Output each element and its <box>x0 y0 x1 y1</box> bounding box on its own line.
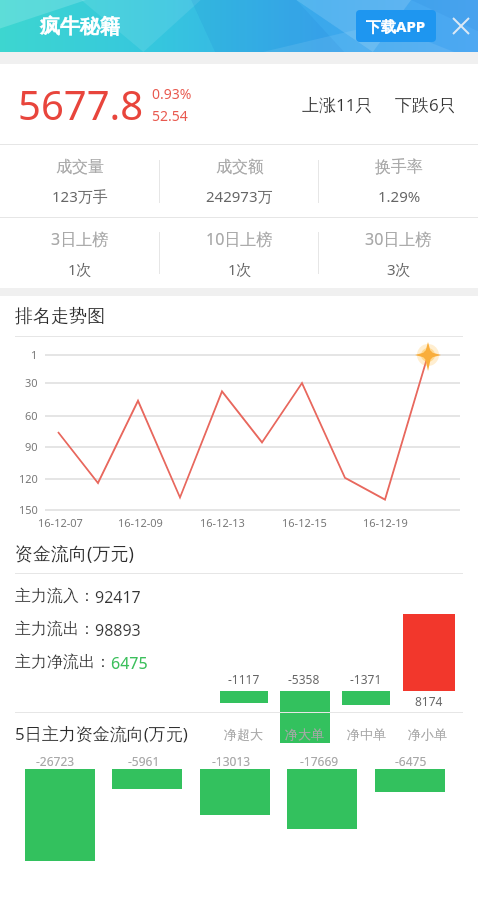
staticText: 疯牛秘籍 <box>40 14 120 39</box>
staticText: 3日上榜 <box>51 228 109 250</box>
staticText: -5961 <box>128 753 160 769</box>
staticText: 净大单 <box>285 726 324 742</box>
button[interactable]: 3日上榜 <box>0 218 160 288</box>
button[interactable]: 关闭 <box>444 9 478 43</box>
staticText: 1.29% <box>378 186 421 206</box>
staticText: 52.54 <box>152 106 188 125</box>
staticText: -6475 <box>395 753 427 769</box>
staticText: 242973万 <box>206 186 273 206</box>
button[interactable]: 成交量 <box>0 145 160 217</box>
button[interactable]: 换手率 <box>319 145 478 217</box>
staticText: 90 <box>25 439 38 454</box>
staticText: 16-12-19 <box>363 515 408 530</box>
button[interactable]: 下载APP <box>356 10 436 42</box>
staticText: 16-12-09 <box>118 515 163 530</box>
staticText: 下载APP <box>366 16 426 36</box>
staticText: 成交额 <box>216 157 264 177</box>
staticText: 主力流入： <box>15 586 95 606</box>
staticText: 下跌6只 <box>395 93 456 116</box>
button[interactable]: 10日上榜 <box>160 218 319 288</box>
staticText: -1371 <box>350 671 382 687</box>
staticText: 1次 <box>68 259 92 279</box>
staticText: 资金流向(万元) <box>15 541 134 566</box>
staticText: 净小单 <box>408 726 447 742</box>
staticText: 上涨11只 <box>302 93 373 116</box>
staticText: -17669 <box>300 753 339 769</box>
staticText: 16-12-07 <box>38 515 83 530</box>
staticText: -5358 <box>288 671 320 687</box>
staticText: 16-12-15 <box>282 515 327 530</box>
staticText: 120 <box>19 471 38 486</box>
staticText: 30 <box>25 375 38 390</box>
staticText: 5日主力资金流向(万元) <box>15 722 188 745</box>
staticText: 10日上榜 <box>206 228 273 250</box>
staticText: 1 <box>31 347 38 362</box>
staticText: 8174 <box>415 693 443 709</box>
staticText: 0.93% <box>152 84 192 103</box>
staticText: 6475 <box>111 652 148 674</box>
staticText: -1117 <box>228 671 260 687</box>
staticText: 5677.8 <box>18 77 144 131</box>
staticText: 30日上榜 <box>365 228 432 250</box>
staticText: 16-12-13 <box>200 515 245 530</box>
staticText: 排名走势图 <box>15 305 105 328</box>
staticText: 98893 <box>95 619 141 641</box>
staticText: -26723 <box>36 753 75 769</box>
staticText: 92417 <box>95 586 141 608</box>
staticText: 150 <box>19 502 38 517</box>
staticText: 60 <box>25 408 38 423</box>
staticText: 主力流出： <box>15 619 95 639</box>
staticText: 主力净流出： <box>15 652 111 672</box>
button[interactable]: 成交额 <box>160 145 319 217</box>
staticText: 3次 <box>387 259 411 279</box>
staticText: 净中单 <box>347 726 386 742</box>
staticText: 换手率 <box>375 157 423 177</box>
staticText: -13013 <box>212 753 251 769</box>
staticText: 成交量 <box>56 157 104 177</box>
staticText: 123万手 <box>52 186 108 206</box>
staticText: 净超大 <box>224 726 263 742</box>
button[interactable]: 30日上榜 <box>319 218 478 288</box>
staticText: 1次 <box>228 259 252 279</box>
